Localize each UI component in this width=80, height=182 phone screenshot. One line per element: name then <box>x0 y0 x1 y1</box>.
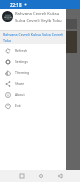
button[interactable]: Rahvana Cevreli Kuksu Sulca Cevreli Veyl… <box>0 31 66 44</box>
staticText: Theming <box>15 70 30 75</box>
button[interactable]: Back <box>50 170 69 182</box>
staticText: srk. <box>2 57 9 62</box>
button[interactable]: About <box>0 89 66 100</box>
button[interactable]: Recents <box>12 170 31 182</box>
staticText: Rahvana Cevreli Kuksu <box>15 11 60 17</box>
button[interactable]: Home <box>31 170 50 182</box>
staticText: Rahvana Cevreli Kuksu Sulca Cevreli Veyl… <box>3 32 65 37</box>
button[interactable]: Exit <box>0 100 66 111</box>
staticText: hlke brch vieb. ourk <box>2 71 11 91</box>
staticText: About <box>15 92 25 97</box>
staticText: bsba <box>2 96 12 101</box>
staticText: Toku <box>3 38 12 43</box>
button[interactable]: Theming <box>0 67 66 78</box>
button[interactable]: Settings <box>0 56 66 67</box>
button[interactable]: Share <box>0 78 66 89</box>
staticText: Settings <box>15 59 28 64</box>
staticText: Share <box>15 81 25 86</box>
staticText: Refresh <box>15 48 28 53</box>
button[interactable]: Refresh <box>0 45 66 56</box>
staticText: Sulca Cevreli Veylb Toku <box>15 18 62 24</box>
staticText: Exit <box>15 103 21 108</box>
staticText: 22:18 <box>10 2 22 8</box>
